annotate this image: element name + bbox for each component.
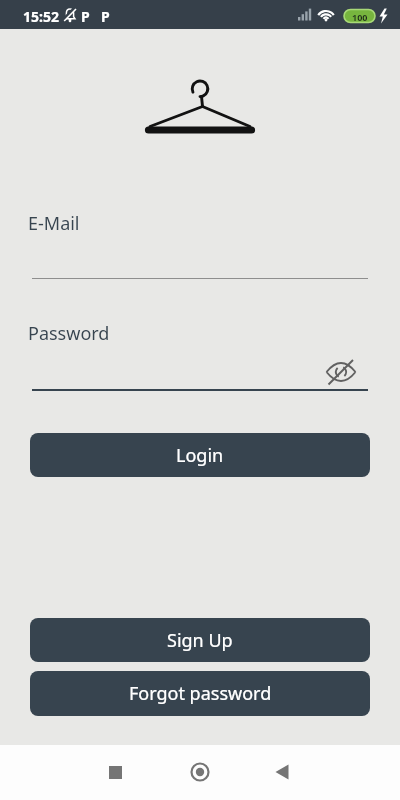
staticText: Sign Up xyxy=(167,628,233,653)
staticText: 15:52 xyxy=(23,7,59,26)
staticText: P xyxy=(81,7,90,26)
staticText: 100 xyxy=(352,11,368,23)
button[interactable]: Login xyxy=(30,433,370,477)
button[interactable] xyxy=(258,748,306,796)
button[interactable] xyxy=(326,357,356,387)
button[interactable]: Sign Up xyxy=(30,618,370,662)
button[interactable] xyxy=(91,748,139,796)
staticText: E-Mail xyxy=(28,211,80,236)
staticText: P xyxy=(101,7,110,26)
staticText: Password xyxy=(28,321,110,346)
staticText: Forgot password xyxy=(129,681,272,706)
button[interactable] xyxy=(176,748,224,796)
staticText: Login xyxy=(176,443,224,468)
button[interactable]: Forgot password xyxy=(30,671,370,716)
